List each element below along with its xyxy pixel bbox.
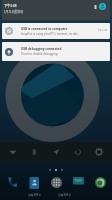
button[interactable]: User profile xyxy=(99,3,106,10)
button[interactable]: USB is connected to computer xyxy=(2,23,110,39)
button[interactable]: Browser xyxy=(90,174,110,200)
button[interactable]: Settings xyxy=(90,142,108,162)
staticText: 下午1:08 xyxy=(97,28,108,32)
button[interactable]: Apps xyxy=(46,174,66,200)
staticText: 下午1:08 xyxy=(4,3,17,8)
button[interactable]: USB debugging connected xyxy=(2,42,110,61)
button[interactable]: Wi-Fi xyxy=(4,142,22,162)
button[interactable]: Bluetooth xyxy=(25,142,43,162)
staticText: USB is connected to computer xyxy=(21,27,68,31)
button[interactable]: Location xyxy=(47,142,65,162)
button[interactable]: Sync xyxy=(69,142,87,162)
button[interactable]: Contacts xyxy=(24,174,44,200)
staticText: USB debugging connected xyxy=(21,47,62,51)
staticText: Touch to disable debugging. xyxy=(21,52,59,56)
staticText: SnapPea is using your PC's internet, no … xyxy=(21,32,80,36)
button[interactable]: Messaging xyxy=(68,174,88,200)
staticText: 没有SIM卡 xyxy=(28,193,42,197)
staticText: 1月11日星期日 xyxy=(4,10,24,14)
button[interactable]: Phone xyxy=(2,174,22,200)
staticText: 没有SIM卡 xyxy=(58,193,72,197)
